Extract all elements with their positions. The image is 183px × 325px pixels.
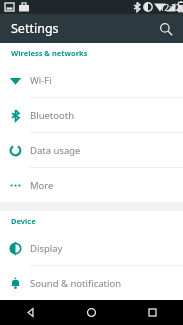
staticText: 12:22 — [160, 2, 181, 13]
button[interactable]: Display — [0, 231, 183, 265]
staticText: Settings — [11, 20, 59, 37]
button[interactable]: Recent apps — [122, 300, 183, 325]
staticText: Bluetooth — [30, 109, 75, 122]
staticText: Device — [11, 216, 36, 226]
button[interactable]: Bluetooth — [0, 98, 183, 132]
button[interactable]: Wi-Fi — [0, 63, 183, 97]
staticText: Data usage — [30, 144, 81, 157]
button[interactable]: Data usage — [0, 133, 183, 167]
button[interactable]: Search — [153, 16, 179, 42]
button[interactable]: More — [0, 168, 183, 202]
staticText: Wireless & networks — [11, 48, 88, 58]
staticText: Display — [30, 242, 63, 255]
staticText: Sound & notification — [30, 277, 122, 290]
staticText: More — [30, 179, 54, 192]
button[interactable]: Home — [61, 300, 122, 325]
staticText: Wi-Fi — [30, 74, 52, 87]
button[interactable]: Sound & notification — [0, 266, 183, 300]
button[interactable]: Back — [0, 300, 61, 325]
